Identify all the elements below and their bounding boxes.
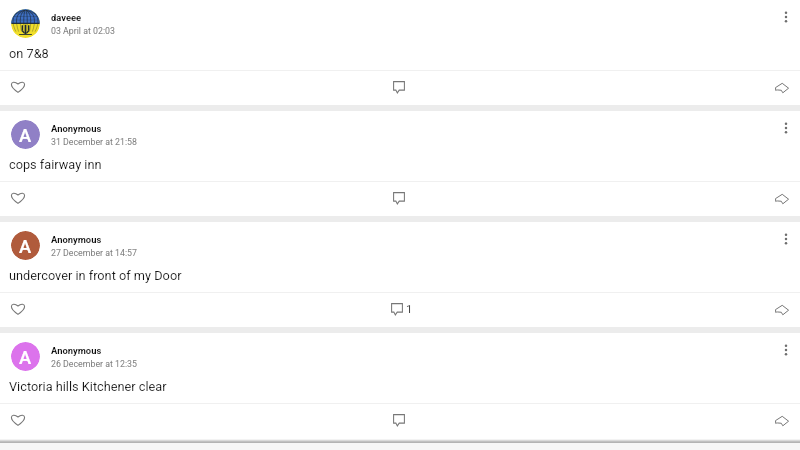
button[interactable]: Comment	[388, 75, 410, 99]
button[interactable]: Like	[4, 184, 32, 212]
button[interactable]: More options	[772, 114, 800, 142]
button[interactable]: More options	[772, 336, 800, 364]
button[interactable]: Share	[768, 407, 796, 435]
staticText: 03 April at 02:03	[51, 26, 115, 36]
button[interactable]: A	[0, 333, 800, 438]
staticText: A	[19, 236, 32, 257]
button[interactable]: Share	[768, 185, 796, 213]
button[interactable]: Share	[768, 74, 796, 102]
staticText: Anonymous	[51, 345, 102, 356]
staticText: 27 December at 14:57	[51, 248, 138, 258]
button[interactable]: daveee	[0, 0, 800, 105]
button[interactable]: More options	[772, 3, 800, 31]
staticText: Victoria hills Kitchener clear	[9, 379, 167, 394]
staticText: Anonymous	[51, 234, 102, 245]
staticText: Anonymous	[51, 123, 102, 134]
button[interactable]: Like	[4, 406, 32, 434]
staticText: daveee	[51, 12, 82, 23]
button[interactable]: Comment	[388, 186, 410, 210]
button[interactable]: Like	[4, 73, 32, 101]
button[interactable]: Like	[4, 295, 32, 323]
staticText: cops fairway inn	[9, 157, 102, 172]
button[interactable]: A	[0, 111, 800, 216]
button[interactable]: Comment	[386, 297, 418, 321]
staticText: 1	[406, 302, 413, 315]
staticText: undercover in front of my Door	[9, 268, 182, 283]
button[interactable]: Comment	[388, 408, 410, 432]
staticText: 26 December at 12:35	[51, 359, 138, 369]
staticText: 31 December at 21:58	[51, 137, 138, 147]
staticText: on 7&8	[9, 46, 49, 61]
button[interactable]: More options	[772, 225, 800, 253]
staticText: A	[19, 347, 32, 368]
staticText: A	[19, 125, 32, 146]
button[interactable]: Share	[768, 296, 796, 324]
button[interactable]: A	[0, 222, 800, 327]
